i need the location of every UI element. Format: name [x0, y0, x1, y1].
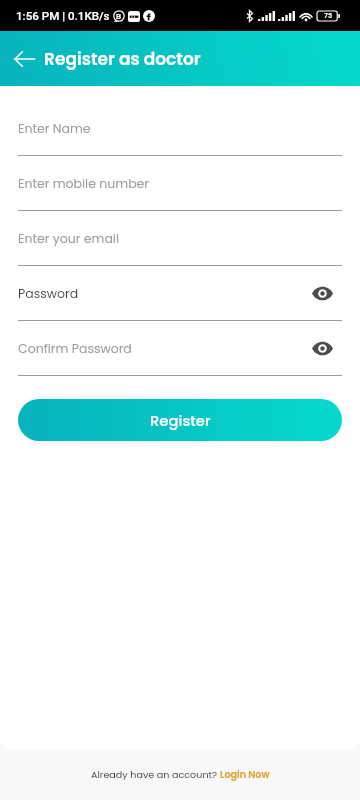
staticText: Already have an account? [91, 768, 220, 781]
staticText: Enter mobile number [18, 175, 150, 192]
button[interactable]: Back [9, 44, 39, 74]
button[interactable]: Toggle password visibility [307, 333, 337, 363]
button[interactable]: Enter mobile number [18, 156, 342, 210]
button[interactable]: Register [18, 399, 342, 441]
button[interactable]: Confirm Password [18, 321, 342, 375]
staticText: B [116, 12, 122, 21]
button[interactable]: Enter Name [18, 101, 342, 155]
staticText: Register [150, 410, 211, 431]
button[interactable]: Enter your email [18, 211, 342, 265]
staticText: Login Now [220, 768, 270, 781]
button[interactable]: Password [18, 266, 342, 320]
staticText: 1:56 PM | 0.1KB/s [16, 9, 110, 23]
button[interactable]: Login Now [220, 768, 270, 781]
staticText: Password [18, 285, 79, 302]
staticText: 75 [324, 12, 332, 20]
staticText: Confirm Password [18, 340, 132, 357]
staticText: Enter your email [18, 230, 119, 247]
button[interactable]: Toggle password visibility [307, 278, 337, 308]
staticText: Enter Name [18, 120, 91, 137]
staticText: Register as doctor [44, 47, 201, 71]
